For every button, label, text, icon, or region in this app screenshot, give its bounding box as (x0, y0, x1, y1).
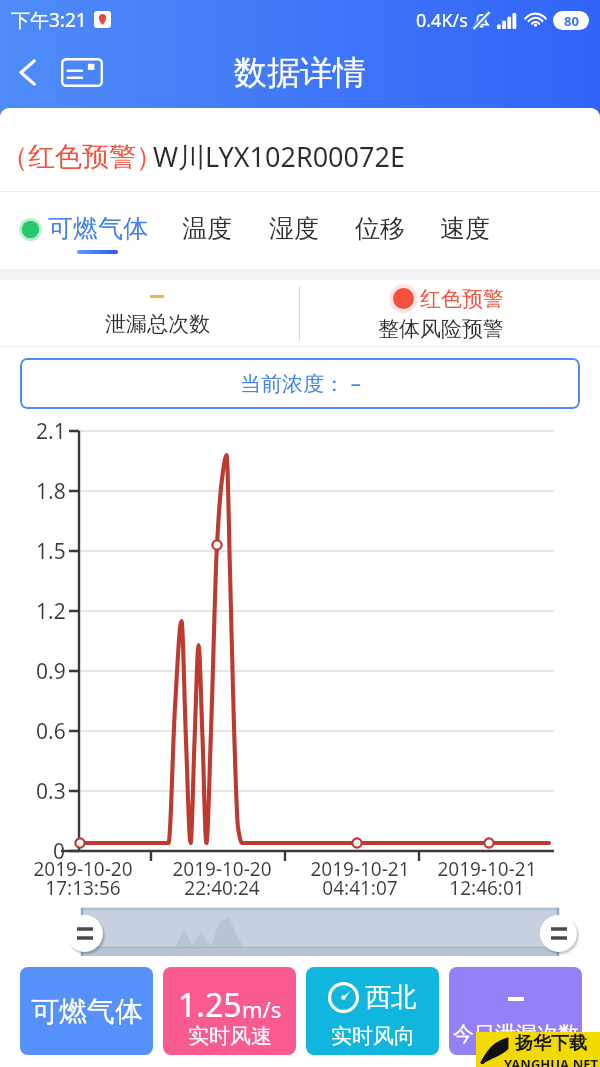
button[interactable]: 1.25 (163, 967, 296, 1055)
button[interactable]: Range handle (66, 915, 103, 952)
staticText: 17:13:56 (45, 875, 121, 901)
staticText: 0.3 (36, 777, 66, 806)
staticText: 红色预警 (420, 286, 504, 312)
staticText: W川LYX102R00072E (153, 138, 405, 175)
button[interactable]: 速度 (440, 213, 490, 244)
staticText: 2019-10-21 (437, 856, 537, 882)
staticText: 22:40:24 (184, 875, 260, 901)
staticText: 可燃气体 (31, 994, 143, 1029)
staticText: 数据详情 (234, 52, 366, 94)
button[interactable]: 可燃气体 (48, 213, 148, 244)
button[interactable]: 今日泄漏次数 (449, 967, 582, 1055)
button[interactable]: 温度 (182, 213, 232, 244)
staticText: 2019-10-20 (172, 856, 272, 882)
staticText: 湿度 (269, 213, 319, 244)
staticText: 扬华下载 (515, 1032, 587, 1055)
staticText: m/s (242, 994, 282, 1024)
staticText: 2.1 (36, 417, 66, 446)
button[interactable]: 红色预警 (300, 280, 581, 347)
button[interactable]: 可燃气体 (20, 967, 153, 1055)
staticText: 1.2 (36, 597, 66, 626)
staticText: 1.5 (36, 537, 66, 566)
staticText: 速度 (440, 213, 490, 244)
staticText: 西北 (365, 981, 417, 1014)
staticText: 泄漏总次数 (105, 311, 210, 337)
button[interactable]: 湿度 (269, 213, 319, 244)
staticText: 1.25 (178, 983, 242, 1027)
button[interactable]: Back (2, 46, 54, 98)
staticText: 整体风险预警 (378, 316, 504, 342)
staticText: 可燃气体 (48, 213, 148, 244)
staticText: 12:46:01 (449, 875, 525, 901)
staticText: 0.6 (36, 717, 66, 746)
staticText: 0 (53, 837, 66, 866)
button[interactable]: 位移 (355, 213, 405, 244)
staticText: YANGHUA.NET (504, 1055, 598, 1067)
staticText: 0.9 (36, 657, 66, 686)
staticText: 今日泄漏次数 (453, 1021, 579, 1047)
staticText: 位移 (355, 213, 405, 244)
staticText: （红色预警） (1, 140, 163, 174)
staticText: 下午3:21 (11, 7, 87, 33)
button[interactable]: 泄漏总次数 (15, 280, 299, 347)
staticText: 当前浓度： – (240, 369, 361, 398)
staticText: 实时风向 (331, 1023, 415, 1049)
staticText: 80 (564, 12, 579, 30)
button[interactable]: 当前浓度： – (20, 358, 580, 409)
staticText: 1.8 (36, 477, 66, 506)
staticText: 温度 (182, 213, 232, 244)
staticText: 0.4K/s (416, 8, 468, 33)
staticText: 2019-10-21 (310, 856, 410, 882)
staticText: 04:41:07 (322, 875, 398, 901)
button[interactable]: Device card (56, 46, 108, 98)
button[interactable]: 西北 (306, 967, 439, 1055)
button[interactable]: Range handle (540, 915, 577, 952)
staticText: 2019-10-20 (33, 856, 133, 882)
staticText: 实时风速 (188, 1023, 272, 1049)
